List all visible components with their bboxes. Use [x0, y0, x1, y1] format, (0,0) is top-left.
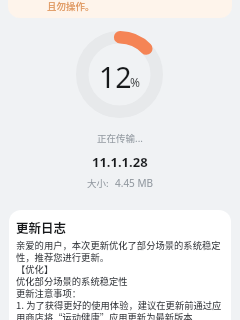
staticText: 11.1.1.28: [92, 153, 148, 171]
button[interactable]: 且勿操作。: [8, 0, 232, 18]
staticText: 且勿操作。: [47, 0, 95, 13]
staticText: 12: [99, 58, 132, 97]
staticText: 4.45 MB: [115, 176, 154, 190]
staticText: 大小:: [87, 176, 109, 190]
staticText: 更新日志: [16, 218, 67, 236]
staticText: 亲爱的用户，本次更新优化了部分场景的系统稳定性，推荐您进行更新。 【优化】 优化…: [16, 238, 229, 320]
staticText: %: [130, 74, 140, 90]
staticText: 正在传输...: [97, 131, 143, 145]
